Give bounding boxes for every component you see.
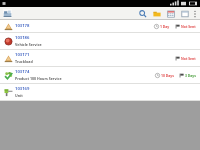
button[interactable]: Windows	[179, 8, 190, 19]
staticText: Product 100 Hours Service	[15, 76, 62, 81]
button[interactable]: Calendar	[165, 8, 176, 19]
button[interactable]: 1 Day	[153, 24, 171, 29]
button[interactable]: 10 Days	[154, 73, 175, 78]
button[interactable]: 103178	[0, 20, 200, 32]
staticText: 103186	[15, 35, 30, 41]
staticText: Truckload	[15, 59, 33, 64]
button[interactable]: Search	[137, 8, 148, 19]
button[interactable]: 3 Days	[178, 73, 197, 78]
staticText: 103178	[15, 23, 30, 29]
staticText: Not Sent	[181, 24, 196, 29]
button[interactable]: 103186	[0, 33, 200, 49]
button[interactable]: Not Sent	[174, 56, 197, 61]
staticText: 103171	[15, 52, 30, 58]
button[interactable]: Not Sent	[174, 24, 197, 29]
button[interactable]: Folders	[151, 8, 162, 19]
button[interactable]: App home	[2, 8, 13, 19]
staticText: 1 Day	[160, 24, 170, 29]
button[interactable]: 103169	[0, 84, 200, 100]
staticText: 103169	[15, 86, 30, 92]
staticText: 103174	[15, 69, 30, 75]
button[interactable]: 103171	[0, 50, 200, 66]
staticText: 3 Days	[185, 73, 196, 78]
button[interactable]: More options	[192, 8, 198, 20]
staticText: Not Sent	[181, 56, 196, 61]
button[interactable]: 103174	[0, 67, 200, 83]
staticText: Unit	[15, 93, 23, 98]
staticText: Vehicle Service	[15, 42, 42, 47]
staticText: 10 Days	[161, 73, 174, 78]
